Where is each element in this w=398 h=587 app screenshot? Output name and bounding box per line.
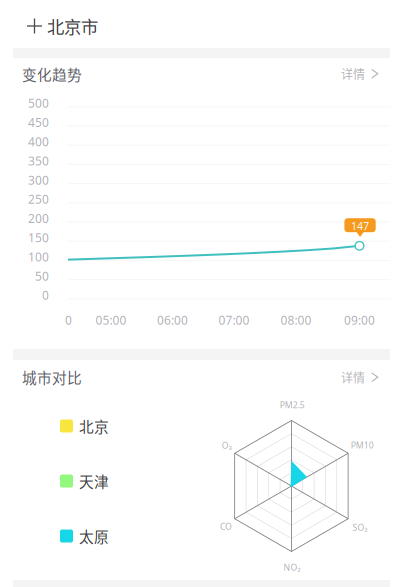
- staticText: 400: [28, 133, 49, 150]
- staticText: 300: [28, 172, 49, 188]
- staticText: 0: [65, 312, 72, 328]
- staticText: 147: [351, 218, 369, 233]
- staticText: 450: [28, 114, 49, 130]
- staticText: 北京市: [47, 13, 98, 39]
- staticText: 08:00: [280, 312, 311, 328]
- staticText: SO₂: [352, 521, 367, 533]
- staticText: 天津: [79, 470, 109, 492]
- staticText: 详情: [341, 368, 365, 386]
- staticText: 太原: [79, 525, 109, 547]
- staticText: PM2.5: [280, 399, 305, 411]
- staticText: 500: [28, 95, 49, 111]
- staticText: 06:00: [157, 312, 188, 328]
- staticText: 05:00: [95, 312, 126, 328]
- staticText: 350: [28, 153, 49, 169]
- button[interactable]: 北京市: [19, 8, 106, 44]
- staticText: NO₂: [283, 562, 300, 573]
- staticText: 150: [28, 229, 49, 246]
- button[interactable]: 详情: [334, 361, 385, 393]
- staticText: 09:00: [344, 312, 375, 328]
- staticText: 200: [28, 210, 49, 226]
- staticText: 城市对比: [22, 366, 82, 388]
- staticText: 50: [35, 268, 49, 284]
- staticText: CO: [220, 520, 232, 532]
- staticText: 详情: [341, 65, 365, 82]
- staticText: PM10: [351, 439, 374, 451]
- button[interactable]: 详情: [334, 58, 385, 89]
- staticText: 100: [28, 249, 49, 265]
- staticText: 变化趋势: [22, 63, 82, 85]
- staticText: 250: [28, 191, 49, 207]
- staticText: 0: [42, 287, 49, 303]
- staticText: O₃: [222, 440, 232, 451]
- staticText: 北京: [79, 415, 109, 437]
- staticText: 07:00: [218, 312, 249, 328]
